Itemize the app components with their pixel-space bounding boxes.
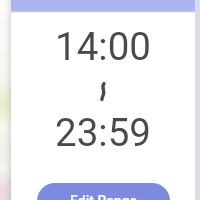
button[interactable]: 14:00 [55,24,151,69]
staticText: Edit Range [70,193,137,200]
other: to [98,82,108,101]
button[interactable]: 23:59 [55,110,151,155]
button[interactable]: Edit Range [37,183,170,200]
